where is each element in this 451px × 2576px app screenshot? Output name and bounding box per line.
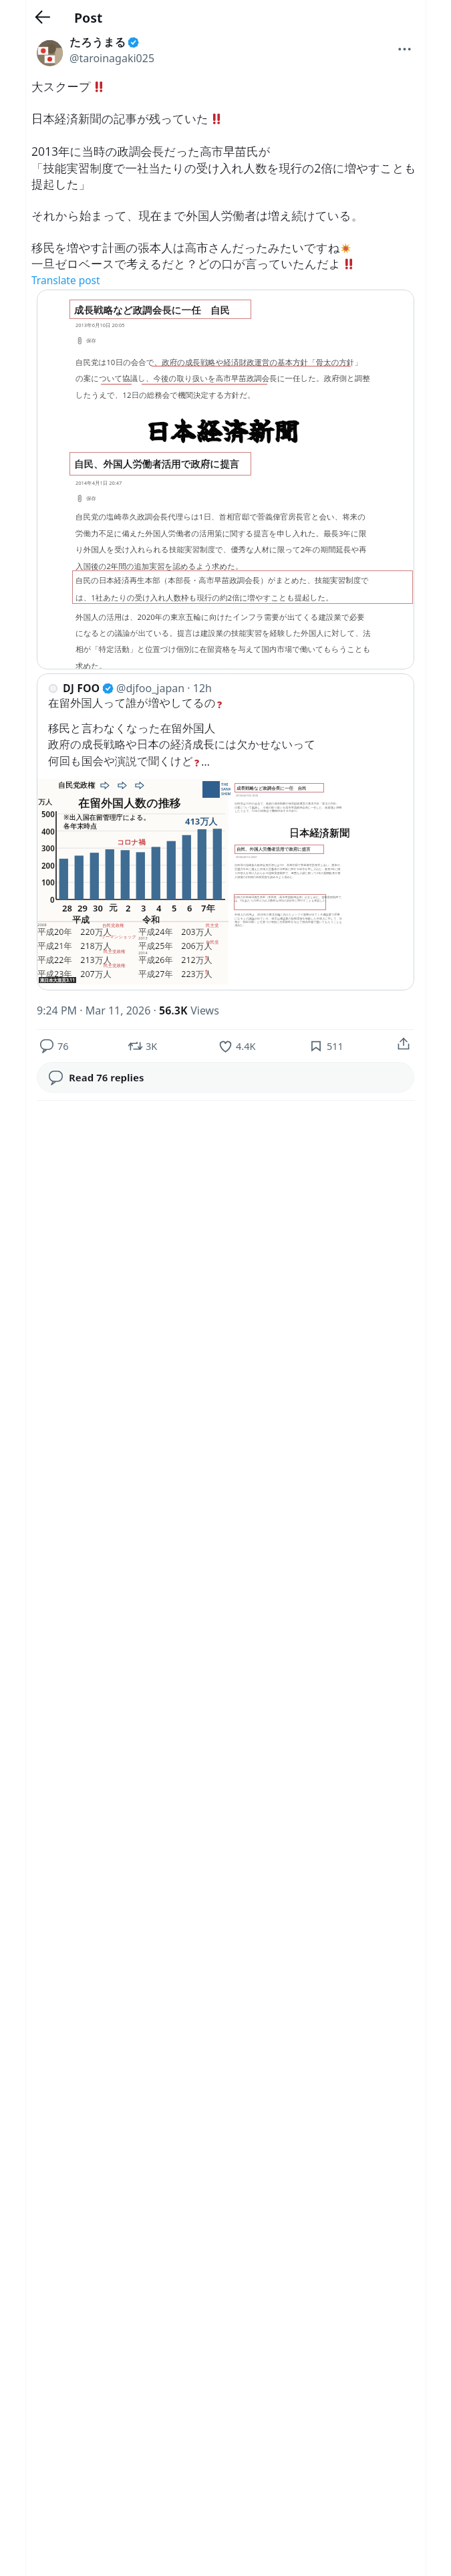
staticText: 2013年6月10日 20:05 xyxy=(236,794,259,797)
staticText: 5 xyxy=(172,902,177,914)
staticText: 9:24 PM · Mar 11, 2026 · xyxy=(37,1003,159,1018)
staticText: ? xyxy=(217,698,222,708)
staticText: THE SANK SHIM xyxy=(221,782,231,796)
staticText: Post xyxy=(74,9,103,27)
staticText: は、1社あたりの受け入れ人数枠も現行の約2倍に増やすことも提起した。 xyxy=(235,899,329,903)
staticText: 民主党政権 xyxy=(104,949,126,954)
staticText: 平成26年 212万人 xyxy=(138,954,212,966)
staticText: ※出入国在留管理庁による。 各年末時点 xyxy=(63,813,150,831)
button[interactable]: Repost xyxy=(128,1038,158,1054)
staticText: ↑ xyxy=(204,955,209,962)
staticText: の案について協議し、今後の取り扱いを高市早苗政調会長に一任した。政府側と調整 xyxy=(235,806,342,809)
staticText: 2014 xyxy=(138,950,148,956)
staticText: ? xyxy=(194,756,200,766)
staticText: 平成22年 213万人 xyxy=(37,954,112,966)
staticText: 28 xyxy=(62,902,72,914)
staticText: 元 xyxy=(109,902,118,913)
staticText: 4 xyxy=(156,902,162,914)
staticText: Translate post xyxy=(31,273,100,287)
staticText: 民主党 xyxy=(206,923,219,928)
staticText: 自民党 xyxy=(206,940,219,945)
staticText: 日本経済新聞 xyxy=(289,827,349,840)
button[interactable]: Share xyxy=(394,1036,414,1052)
staticText: Read 76 replies xyxy=(69,1071,144,1084)
staticText: 30 xyxy=(93,902,103,914)
staticText: 2013 xyxy=(138,936,148,941)
staticText: 300 xyxy=(41,843,55,854)
staticText: 511 xyxy=(327,1039,343,1053)
staticText: 外国人の活用は、2020年の東京五輪に向けたインフラ需要が出てくる建設業で必要 xyxy=(235,913,340,917)
staticText: … xyxy=(201,754,210,768)
staticText: 保存 xyxy=(86,338,96,344)
staticText: 2013年6月10日 20:05 xyxy=(76,322,125,328)
staticText: 移民を増やす計画の張本人は高市さんだったみたいですね xyxy=(31,241,340,255)
staticText: になるとの議論が出ている。提言は建設業の技能実習を経験した外国人に対して、法 xyxy=(235,917,342,920)
staticText: になるとの議論が出ている。提言は建設業の技能実習を経験した外国人に対して、法 xyxy=(76,629,371,638)
staticText: 何回も国会や演説で聞くけど xyxy=(48,754,193,768)
staticText: 平成20年 220万人 xyxy=(37,926,112,938)
button[interactable]: Read 76 replies xyxy=(37,1062,414,1093)
staticText: コロナ禍 xyxy=(117,838,146,847)
staticText: 労働力不足に備えた外国人労働者の活用策に関する提言を申し入れた。最長3年に限 xyxy=(76,528,367,539)
staticText: したうえで、12日の総務会で機関決定する方針だ。 xyxy=(235,809,300,813)
staticText: 4.4K xyxy=(236,1039,256,1053)
staticText: 日本経済新聞 xyxy=(145,411,300,448)
staticText: 6 xyxy=(187,902,192,914)
button[interactable]: Back xyxy=(31,5,53,28)
button[interactable]: Like xyxy=(218,1038,256,1054)
staticText: リーマンショック xyxy=(101,934,137,940)
staticText: 自民の日本経済再生本部（本部長・高市早苗政調会長）がまとめた、技能実習制度で xyxy=(235,895,341,899)
staticText: 相が「特定活動」と位置づけ個別に在留資格を与えて国内市場で働いてもらうことも xyxy=(76,645,371,654)
staticText: 保存 xyxy=(86,496,96,502)
staticText: DJ FOO xyxy=(63,681,100,695)
button[interactable]: DJ FOO xyxy=(37,673,414,990)
staticText: 求めた。 xyxy=(235,924,246,927)
staticText: 万人 xyxy=(38,798,52,807)
staticText: 大スクープ xyxy=(31,80,91,94)
staticText: 平成24年 203万人 xyxy=(138,926,212,938)
staticText: Views xyxy=(188,1003,219,1018)
staticText: 東日本大震災3.11 xyxy=(40,977,75,983)
button[interactable]: More options xyxy=(394,39,414,59)
staticText: 2 xyxy=(126,902,131,914)
staticText: 自民、外国人労働者活用で政府に提言 xyxy=(237,847,311,852)
staticText: 政府の成長戦略や日本の経済成長には欠かせないって xyxy=(48,738,316,752)
staticText: 3 xyxy=(141,902,146,914)
staticText: 413万人 xyxy=(185,815,218,827)
staticText: したうえで、12日の総務会で機関決定する方針だ。 xyxy=(76,390,255,401)
button[interactable]: Article screenshot xyxy=(37,290,414,669)
staticText: それから始まって、現在まで外国人労働者は増え続けている。 xyxy=(31,209,363,223)
staticText: 自民の日本経済再生本部（本部長・高市早苗政調会長）がまとめた、技能実習制度で xyxy=(76,576,369,585)
button[interactable]: Reply xyxy=(39,1038,69,1054)
staticText: @taroinagaki025 xyxy=(69,51,155,66)
button[interactable]: Bookmark xyxy=(309,1038,343,1054)
staticText: 自民党政権 xyxy=(102,923,124,928)
staticText: 自民党は10日の会合で、政府の成長戦略や経済財政運営の基本方針「骨太の方針」 xyxy=(76,357,363,368)
staticText: は、1社あたりの受け入れ人数枠も現行の約2倍に増やすことも提起した。 xyxy=(76,593,333,603)
staticText: 令和 xyxy=(142,914,160,925)
staticText: 成長戦略など政調会長に一任 自民 xyxy=(74,303,231,316)
staticText: 日本経済新聞の記事が残っていた xyxy=(31,112,208,126)
staticText: 相が「特定活動」と位置づけ個別に在留資格を与えて国内市場で働いてもらうことも xyxy=(235,920,342,924)
staticText: 平成 xyxy=(72,914,90,925)
staticText: 200 xyxy=(41,861,55,871)
staticText: 入国後の2年間の追加実習を認めるよう求めた。 xyxy=(235,875,296,879)
staticText: 500 xyxy=(41,809,55,820)
staticText: 76 xyxy=(57,1039,69,1053)
staticText: 自民党は10日の会合で、政府の成長戦略や経済財政運営の基本方針「骨太の方針」 xyxy=(235,802,339,806)
staticText: 平成21年 218万人 xyxy=(37,940,112,952)
button[interactable]: Profile photo xyxy=(37,40,63,66)
staticText: 2013年に当時の政調会長だった高市早苗氏が 「技能実習制度で一社当たりの受け入… xyxy=(31,143,416,192)
staticText: 民主党政権 xyxy=(104,963,126,968)
staticText: 求めた。 xyxy=(76,661,107,669)
staticText: 移民と言わなくなった在留外国人 xyxy=(48,722,216,736)
staticText: 自民党の塩崎恭久政調会長代理らは1日、首相官邸で菅義偉官房長官と会い、将来の xyxy=(235,863,341,867)
staticText: り外国人を受け入れられる技能実習制度で、優秀な人材に限って2年の期間延長や再 xyxy=(76,544,367,555)
staticText: 0 xyxy=(50,895,55,905)
staticText: 7年 xyxy=(201,902,215,914)
button[interactable]: Translate post xyxy=(31,273,100,287)
staticText: ↑ xyxy=(204,969,209,976)
staticText: 56.3K xyxy=(159,1003,188,1018)
staticText: 平成27年 223万人 xyxy=(138,968,212,980)
staticText: 2014年4月1日 20:47 xyxy=(76,479,122,486)
